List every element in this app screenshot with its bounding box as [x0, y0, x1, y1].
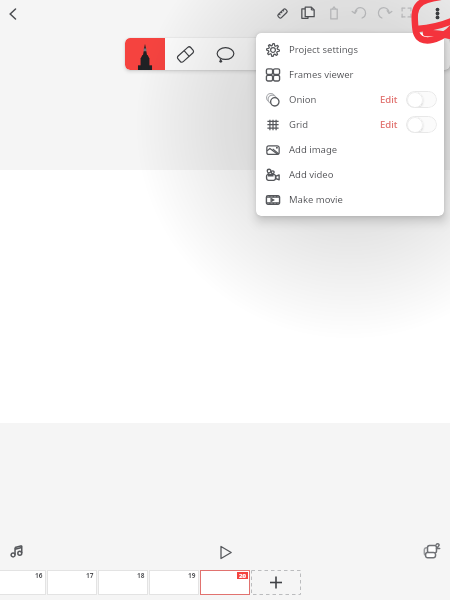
- button[interactable]: More options: [426, 2, 448, 24]
- button[interactable]: Fullscreen: [395, 1, 417, 23]
- button[interactable]: Project settings: [256, 37, 444, 62]
- staticText: Frames viewer: [289, 68, 354, 81]
- button[interactable]: Duplicate: [297, 2, 319, 24]
- button[interactable]: Add video: [256, 162, 444, 187]
- staticText: Add image: [289, 143, 338, 156]
- button[interactable]: Frames viewer: [256, 62, 444, 87]
- button[interactable]: Audio: [5, 539, 29, 563]
- button[interactable]: Back: [2, 3, 24, 25]
- button[interactable]: Play: [213, 540, 237, 564]
- staticText: 18: [137, 571, 145, 580]
- button[interactable]: Pen: [125, 38, 165, 70]
- staticText: Project settings: [289, 43, 358, 56]
- staticText: Make movie: [289, 193, 343, 206]
- button[interactable]: Grid toggle: [406, 116, 437, 133]
- staticText: 17: [86, 571, 94, 580]
- button[interactable]: Edit: [380, 118, 398, 131]
- button[interactable]: Undo: [349, 2, 371, 24]
- staticText: 20: [239, 572, 246, 579]
- button[interactable]: Lasso: [205, 38, 245, 70]
- button[interactable]: Make movie: [256, 187, 444, 212]
- button[interactable]: 20: [200, 570, 250, 595]
- staticText: 16: [35, 571, 43, 580]
- button[interactable]: Add frame: [251, 570, 301, 595]
- button[interactable]: Eraser: [165, 38, 205, 70]
- staticText: Add video: [289, 168, 334, 181]
- button[interactable]: Grid: [256, 112, 444, 137]
- button[interactable]: 16: [0, 570, 46, 595]
- button[interactable]: Redo: [373, 2, 395, 24]
- staticText: Onion: [289, 93, 317, 106]
- button[interactable]: 19: [149, 570, 199, 595]
- button[interactable]: Layers: [420, 539, 444, 563]
- button[interactable]: Onion: [256, 87, 444, 112]
- button[interactable]: Ruler: [271, 2, 293, 24]
- staticText: Grid: [289, 118, 309, 131]
- button[interactable]: Paste: [323, 2, 345, 24]
- button[interactable]: 18: [98, 570, 148, 595]
- button[interactable]: 17: [47, 570, 97, 595]
- button[interactable]: Add image: [256, 137, 444, 162]
- button[interactable]: Edit: [380, 93, 398, 106]
- button[interactable]: Onion toggle: [406, 91, 437, 108]
- staticText: 19: [188, 571, 196, 580]
